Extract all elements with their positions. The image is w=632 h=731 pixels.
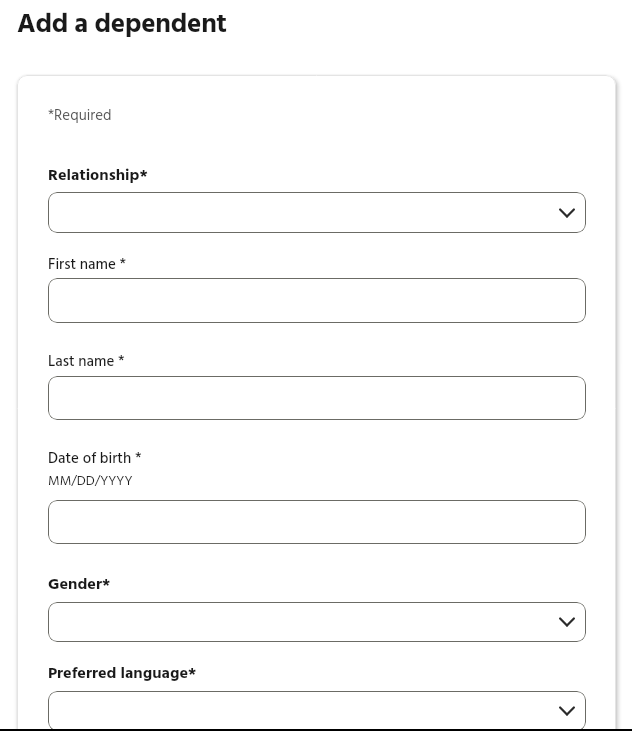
button[interactable]: Gender — [48, 602, 586, 642]
button[interactable]: First name — [48, 278, 586, 323]
staticText: MM/DD/YYYY — [48, 472, 133, 492]
staticText: Add a dependent — [17, 6, 227, 45]
staticText: First name * — [48, 255, 127, 277]
button[interactable]: Relationship — [48, 192, 586, 233]
button[interactable]: Preferred language — [48, 691, 586, 731]
staticText: Date of birth * — [48, 449, 142, 471]
staticText: *Required — [48, 106, 112, 128]
staticText: Gender* — [48, 574, 111, 597]
staticText: Relationship* — [48, 165, 148, 188]
button[interactable]: Last name — [48, 376, 586, 420]
button[interactable]: Date of birth — [48, 500, 586, 544]
staticText: Last name * — [48, 352, 125, 374]
staticText: Preferred language* — [48, 663, 197, 686]
